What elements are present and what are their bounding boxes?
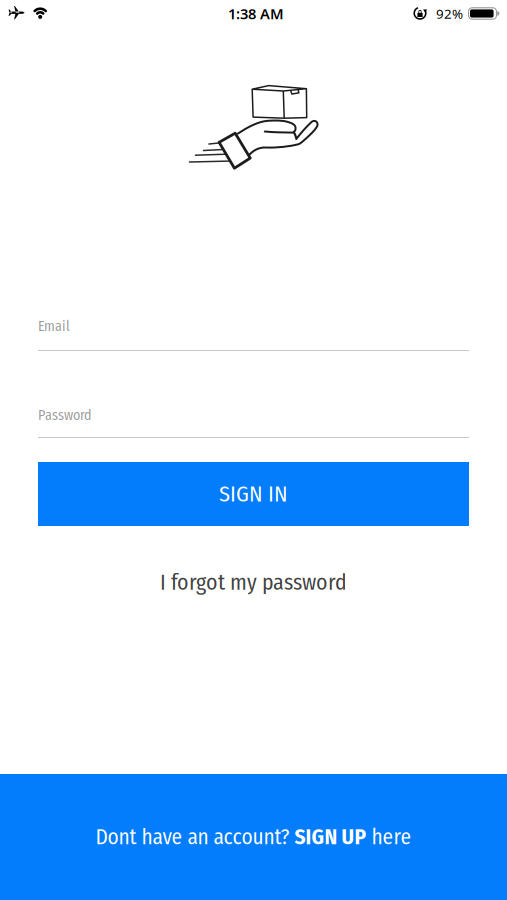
- staticText: Email: [38, 318, 70, 335]
- staticText: Password: [38, 407, 92, 424]
- staticText: I forgot my password: [160, 569, 347, 595]
- staticText: 1:38 AM: [228, 4, 284, 23]
- button[interactable]: SIGN IN: [38, 462, 469, 526]
- staticText: SIGN IN: [219, 481, 288, 507]
- staticText: 92%: [436, 5, 463, 22]
- button[interactable]: I forgot my password: [160, 569, 347, 595]
- button[interactable]: Dont have an account? SIGN UP here: [0, 774, 507, 900]
- button[interactable]: Password: [38, 407, 469, 438]
- button[interactable]: Email: [38, 318, 469, 351]
- staticText: Dont have an account? SIGN UP here: [95, 824, 411, 849]
